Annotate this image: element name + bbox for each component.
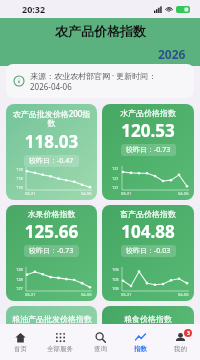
staticText: 指数 [134, 345, 147, 353]
staticText: 03-31 [25, 191, 36, 196]
button[interactable]: 全部服务 [40, 324, 80, 360]
staticText: 04-06 [178, 191, 189, 196]
staticText: 03-31 [25, 292, 36, 297]
staticText: 121 [112, 166, 119, 171]
button[interactable]: 畜产品价格指数 [102, 205, 194, 301]
staticText: 农产品价格指数 [55, 23, 146, 39]
other: 指数 [135, 332, 146, 343]
other: 全部服务 [55, 332, 66, 343]
staticText: 水产品价格指数 [107, 108, 189, 118]
staticText: 118.03 [11, 130, 92, 153]
staticText: 03-31 [121, 191, 132, 196]
staticText: 2026 [158, 46, 186, 62]
staticText: 121 [112, 185, 119, 190]
staticText: 2026-04-06 [30, 81, 72, 92]
staticText: 128 [16, 277, 23, 282]
other: 我的 [175, 332, 186, 343]
staticText: 20:32 [22, 3, 46, 15]
staticText: 来源：农业农村部官网 · 更新时间： [30, 70, 157, 81]
button[interactable]: 我的 [160, 324, 200, 360]
button[interactable]: 查询 [80, 324, 120, 360]
staticText: 首页 [14, 345, 27, 353]
staticText: 粮食价格指数 [124, 314, 172, 324]
staticText: 04-06 [81, 292, 92, 297]
staticText: 我的 [174, 345, 187, 353]
button[interactable]: 来源：农业农村部官网 · 更新时间： [6, 64, 194, 98]
staticText: 125.66 [11, 220, 92, 243]
staticText: 04-06 [178, 292, 189, 297]
button[interactable]: 水产品价格指数 [102, 104, 194, 200]
staticText: 水果价格指数 [11, 209, 92, 219]
button[interactable]: 水果价格指数 [6, 205, 97, 301]
staticText: 畜产品价格指数 [107, 209, 189, 219]
staticText: 较昨日：-0.73 [29, 246, 74, 256]
staticText: 105 [112, 286, 119, 291]
staticText: 118 [16, 185, 23, 190]
staticText: 3 [187, 330, 190, 337]
other: 查询 [95, 332, 106, 343]
staticText: 121 [112, 176, 119, 181]
button[interactable]: 农产品批发价格200指数 [6, 104, 97, 200]
staticText: 较昨日：-0.03 [126, 246, 171, 256]
button[interactable]: 粮食价格指数 [102, 306, 194, 332]
staticText: 105 [112, 277, 119, 282]
staticText: 03-31 [121, 292, 132, 297]
staticText: 118 [16, 176, 23, 181]
staticText: 粮油产品批发价格指数 [12, 314, 92, 324]
staticText: 查询 [94, 345, 107, 353]
button[interactable]: 指数 [120, 324, 160, 360]
staticText: 120.53 [107, 119, 189, 142]
staticText: 104.88 [107, 220, 189, 243]
staticText: 04-06 [81, 191, 92, 196]
staticText: 农产品批发价格200指数 [11, 108, 92, 129]
staticText: 较昨日：-0.73 [126, 145, 171, 155]
other: 首页 [15, 332, 26, 343]
staticText: 较昨日：-0.47 [29, 156, 74, 166]
button[interactable]: 首页 [0, 324, 40, 360]
staticText: 118 [16, 167, 23, 172]
button[interactable]: 粮油产品批发价格指数 [6, 306, 97, 332]
staticText: 128 [16, 267, 23, 272]
staticText: 全部服务 [47, 345, 73, 353]
staticText: 105 [112, 267, 119, 272]
staticText: 127 [16, 286, 23, 291]
